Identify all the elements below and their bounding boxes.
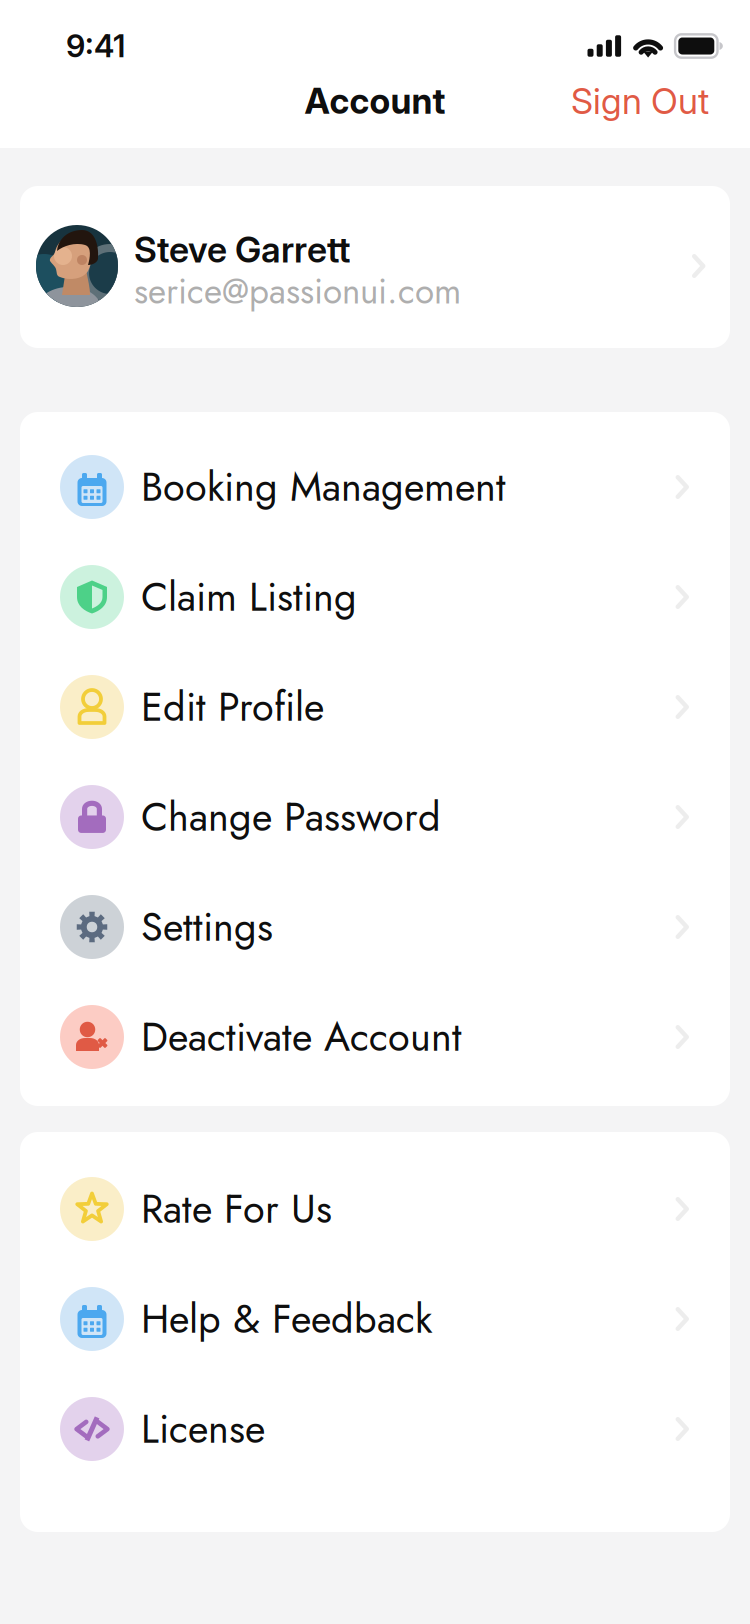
button[interactable]: Steve Garrett bbox=[20, 186, 730, 348]
staticText: Settings bbox=[141, 898, 273, 956]
staticText: Edit Profile bbox=[141, 678, 324, 736]
button[interactable]: Settings bbox=[20, 872, 730, 982]
staticText: License bbox=[141, 1400, 265, 1458]
button[interactable]: Sign Out bbox=[490, 73, 750, 129]
button[interactable]: License bbox=[20, 1374, 730, 1484]
button[interactable]: Change Password bbox=[20, 762, 730, 872]
button[interactable]: Booking Management bbox=[20, 432, 730, 542]
staticText: Booking Management bbox=[141, 458, 506, 516]
button[interactable]: Rate For Us bbox=[20, 1154, 730, 1264]
staticText: Claim Listing bbox=[141, 568, 357, 626]
staticText: Sign Out bbox=[571, 80, 709, 122]
staticText: Account bbox=[304, 80, 445, 122]
staticText: Change Password bbox=[141, 788, 441, 846]
button[interactable]: Help & Feedback bbox=[20, 1264, 730, 1374]
staticText: 9:41 bbox=[66, 27, 125, 65]
button[interactable]: Deactivate Account bbox=[20, 982, 730, 1092]
staticText: serice@passionui.com bbox=[134, 266, 461, 317]
button[interactable]: Claim Listing bbox=[20, 542, 730, 652]
staticText: Deactivate Account bbox=[141, 1008, 462, 1066]
staticText: Help & Feedback bbox=[141, 1290, 432, 1348]
button[interactable]: Edit Profile bbox=[20, 652, 730, 762]
staticText: Steve Garrett bbox=[134, 228, 350, 271]
staticText: Rate For Us bbox=[141, 1180, 332, 1238]
